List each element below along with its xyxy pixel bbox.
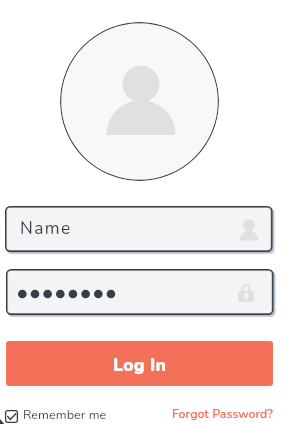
other: Profile picture	[60, 22, 219, 181]
staticText: Remember me	[23, 406, 107, 423]
button[interactable]: Password	[6, 269, 273, 315]
staticText: Log In	[113, 354, 167, 378]
button[interactable]: Log In	[6, 341, 273, 386]
staticText: Forgot Password?	[172, 406, 273, 423]
button[interactable]: Forgot Password?	[172, 406, 273, 423]
staticText: Name	[20, 217, 72, 241]
button[interactable]: Name	[5, 206, 272, 252]
button[interactable]: Remember me	[5, 406, 107, 423]
